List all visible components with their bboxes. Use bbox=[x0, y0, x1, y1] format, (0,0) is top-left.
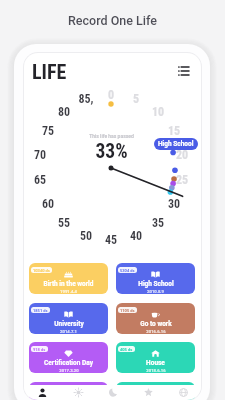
staticText: Certification Day bbox=[44, 359, 93, 367]
staticText: 30 bbox=[160, 197, 188, 211]
staticText: 85, bbox=[72, 92, 100, 106]
button[interactable] bbox=[29, 382, 108, 400]
staticText: 918 ds bbox=[33, 347, 46, 352]
staticText: 5304 ds bbox=[120, 268, 135, 273]
button[interactable]: globe bbox=[166, 385, 201, 400]
staticText: 75 bbox=[34, 124, 62, 138]
staticText: 2018.6.16 bbox=[146, 368, 166, 373]
staticText: 35 bbox=[144, 216, 172, 230]
staticText: This life has passed bbox=[89, 133, 134, 139]
staticText: 20 bbox=[168, 148, 196, 162]
button[interactable]: person bbox=[24, 385, 60, 400]
button[interactable]: sun bbox=[60, 385, 96, 400]
staticText: University bbox=[54, 320, 84, 328]
staticText: 5 bbox=[122, 92, 150, 106]
staticText: Birth in the world bbox=[43, 280, 94, 288]
button[interactable]: High School bbox=[154, 138, 198, 150]
staticText: 33% bbox=[95, 140, 128, 163]
staticText: 25 bbox=[168, 173, 196, 187]
staticText: Record One Life bbox=[0, 13, 225, 28]
staticText: 70 bbox=[26, 148, 54, 162]
staticText: Go to work bbox=[140, 320, 172, 328]
staticText: 0 bbox=[97, 88, 125, 102]
button[interactable]: 918 ds bbox=[29, 342, 108, 373]
button[interactable]: 1105 ds bbox=[116, 303, 195, 334]
staticText: 2010.8.9 bbox=[147, 289, 164, 294]
staticText: 40 bbox=[122, 229, 150, 243]
staticText: 2017.3.20 bbox=[59, 368, 79, 373]
button[interactable]: star bbox=[131, 385, 166, 400]
staticText: 45 bbox=[97, 233, 125, 247]
button[interactable]: moon bbox=[96, 385, 131, 400]
staticText: 15 bbox=[160, 124, 188, 138]
staticText: 405 ds bbox=[120, 347, 133, 352]
staticText: 2014.7.1 bbox=[60, 329, 77, 334]
staticText: 50 bbox=[72, 229, 100, 243]
staticText: 1991.4.4 bbox=[60, 289, 77, 294]
staticText: 2016.6.16 bbox=[146, 329, 166, 334]
button[interactable] bbox=[116, 382, 195, 400]
staticText: 55 bbox=[50, 216, 78, 230]
staticText: 1851 ds bbox=[33, 308, 48, 313]
button[interactable]: 1851 ds bbox=[29, 303, 108, 334]
staticText: House bbox=[146, 359, 165, 367]
button[interactable]: 405 ds bbox=[116, 342, 195, 373]
staticText: 80 bbox=[50, 105, 78, 119]
staticText: 10340 ds bbox=[33, 268, 50, 273]
staticText: 60 bbox=[34, 197, 62, 211]
button[interactable]: 10340 ds bbox=[29, 263, 108, 294]
button[interactable]: 5304 ds bbox=[116, 263, 195, 294]
staticText: 10 bbox=[144, 105, 172, 119]
button[interactable]: List view bbox=[173, 60, 193, 80]
staticText: High School bbox=[138, 280, 174, 288]
staticText: 1105 ds bbox=[120, 308, 135, 313]
staticText: 65 bbox=[26, 173, 54, 187]
staticText: LIFE bbox=[32, 60, 67, 83]
staticText: High School bbox=[158, 140, 194, 148]
